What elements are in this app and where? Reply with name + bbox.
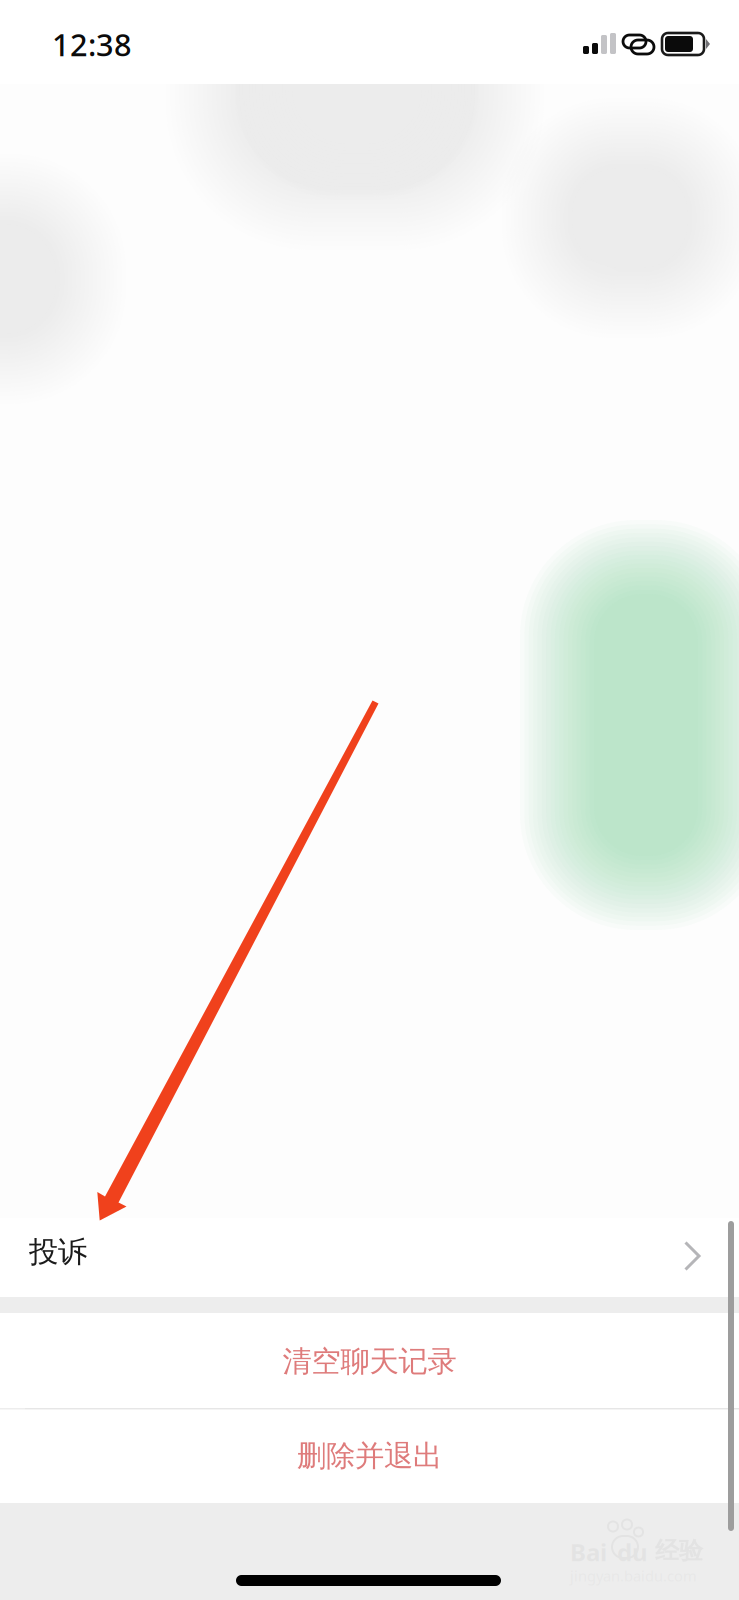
staticText: Bai (570, 1536, 607, 1568)
button[interactable]: 删除并退出 (0, 1409, 739, 1503)
staticText: 删除并退出 (297, 1438, 442, 1474)
button[interactable]: 清空聊天记录 (0, 1313, 739, 1408)
staticText: 12:38 (52, 24, 132, 65)
staticText: 清空聊天记录 (282, 1343, 456, 1379)
staticText: 经验 (655, 1536, 703, 1565)
staticText: 投诉 (29, 1234, 87, 1270)
staticText: du (617, 1536, 648, 1568)
button[interactable]: 投诉 (0, 1218, 739, 1297)
